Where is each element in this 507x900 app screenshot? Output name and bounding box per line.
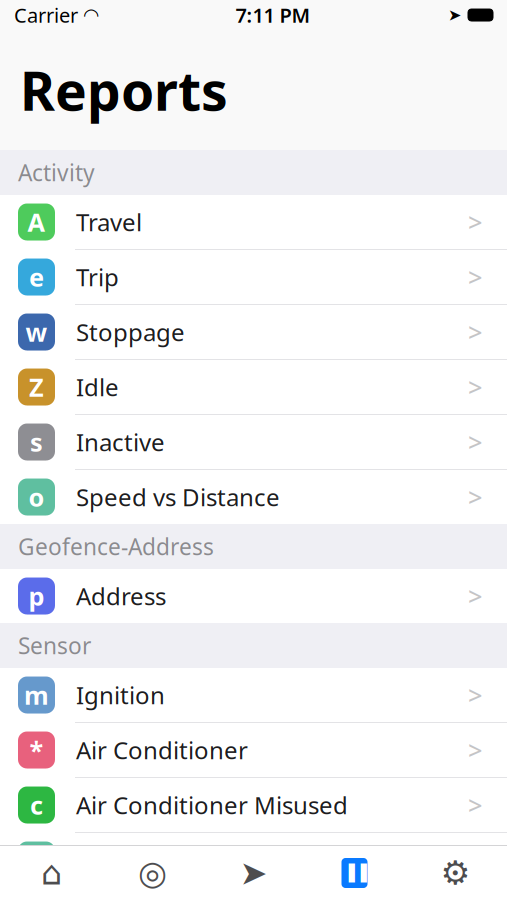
staticText: w xyxy=(25,315,47,349)
staticText: > xyxy=(468,579,482,613)
staticText: ➤ xyxy=(448,6,461,24)
staticText: e xyxy=(29,260,44,294)
staticText: A xyxy=(27,205,45,239)
staticText: Air Conditioner xyxy=(76,734,248,766)
staticText: Z xyxy=(29,370,44,404)
staticText: > xyxy=(468,788,482,822)
staticText: d xyxy=(28,843,44,877)
staticText: Door xyxy=(76,844,134,876)
staticText: Address xyxy=(76,580,166,612)
staticText: 7:11 PM xyxy=(235,2,310,28)
staticText: > xyxy=(468,205,482,239)
staticText: Idle xyxy=(76,371,119,403)
staticText: > xyxy=(468,480,482,514)
staticText: Inactive xyxy=(76,426,165,458)
button[interactable]: e xyxy=(0,250,507,304)
staticText: > xyxy=(468,843,482,877)
button[interactable]: Z xyxy=(0,360,507,414)
staticText: Sensor xyxy=(18,630,91,660)
staticText: ▐▐ xyxy=(342,864,366,882)
staticText: Carrier xyxy=(14,2,78,28)
staticText: Trip xyxy=(76,261,119,293)
staticText: > xyxy=(468,425,482,459)
staticText: p xyxy=(28,579,44,613)
staticText: Activity xyxy=(18,157,95,187)
staticText: Travel xyxy=(76,206,142,238)
staticText: > xyxy=(468,315,482,349)
button[interactable]: * xyxy=(0,723,507,777)
button[interactable]: Track xyxy=(203,846,304,900)
staticText: Ignition xyxy=(76,679,165,711)
staticText: > xyxy=(468,733,482,767)
staticText: Reports xyxy=(20,55,228,125)
button[interactable]: d xyxy=(0,833,507,887)
button[interactable]: Settings xyxy=(405,846,506,900)
staticText: m xyxy=(24,678,49,712)
button[interactable]: s xyxy=(0,415,507,469)
staticText: o xyxy=(28,480,44,514)
button[interactable]: Home xyxy=(1,846,102,900)
staticText: ➤ xyxy=(239,854,267,892)
staticText: c xyxy=(30,788,43,822)
staticText: ⌂ xyxy=(41,854,62,892)
button[interactable]: m xyxy=(0,668,507,722)
staticText: Air Conditioner Misused xyxy=(76,789,348,821)
staticText: > xyxy=(468,260,482,294)
staticText: Stoppage xyxy=(76,316,185,348)
button[interactable]: p xyxy=(0,569,507,623)
staticText: ◠ xyxy=(84,4,98,26)
button[interactable]: o xyxy=(0,470,507,524)
staticText: Speed vs Distance xyxy=(76,481,280,513)
button[interactable]: Reports xyxy=(304,846,405,900)
staticText: > xyxy=(468,370,482,404)
button[interactable]: w xyxy=(0,305,507,359)
staticText: * xyxy=(29,733,43,767)
button[interactable]: Places xyxy=(102,846,203,900)
staticText: > xyxy=(468,678,482,712)
button[interactable]: c xyxy=(0,778,507,832)
staticText: ⚙ xyxy=(440,854,470,892)
staticText: ◎ xyxy=(138,854,167,892)
staticText: s xyxy=(30,425,43,459)
button[interactable]: A xyxy=(0,195,507,249)
staticText: Geofence-Address xyxy=(18,531,214,561)
